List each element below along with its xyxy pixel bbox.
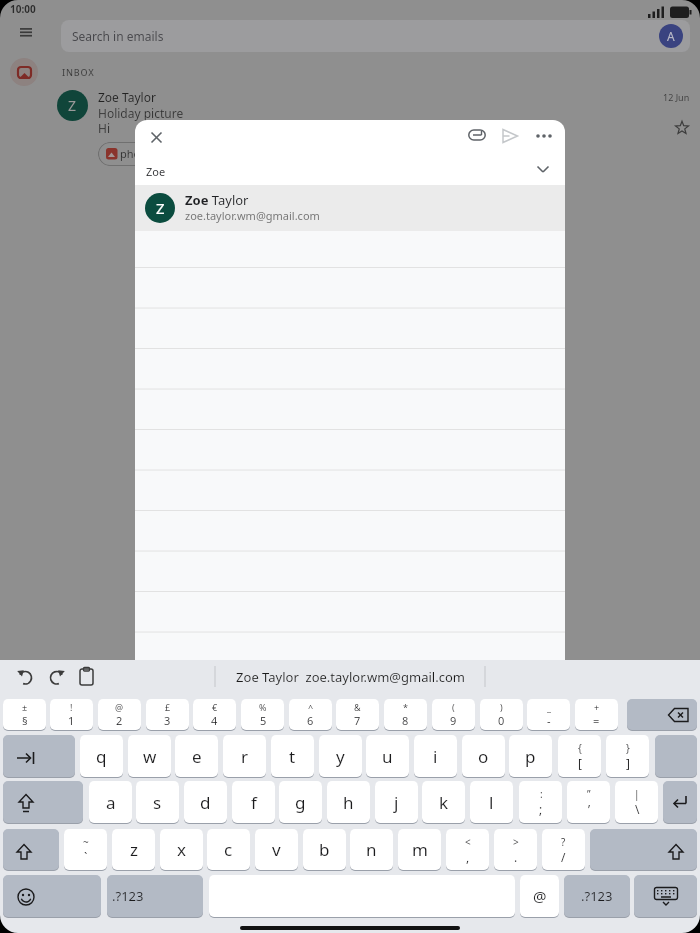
staticText: Z [68,96,77,115]
button[interactable]: % [241,699,284,730]
button[interactable]: ± [3,699,46,730]
staticText: % [259,701,267,713]
button[interactable]: w [128,735,171,777]
staticText: j [394,791,399,814]
button[interactable]: m [398,829,441,870]
button[interactable]: ~ [64,829,107,870]
button[interactable]: @ [520,875,559,917]
staticText: @ [533,886,547,906]
button[interactable]: z [112,829,155,870]
button[interactable] [655,735,697,777]
button[interactable]: d [184,781,227,823]
button[interactable] [537,166,549,173]
staticText: Zoe [146,164,166,179]
button[interactable] [663,781,697,823]
button[interactable]: .?123 [107,875,203,917]
button[interactable]: .?123 [564,875,630,917]
button[interactable] [17,669,34,685]
button[interactable]: s [136,781,179,823]
staticText: pho [120,146,141,161]
button[interactable]: v [255,829,298,870]
staticText: a [106,791,116,814]
button[interactable]: < [446,829,489,870]
button[interactable]: _ [527,699,570,730]
staticText: A [667,28,675,44]
staticText: n [366,838,377,861]
button[interactable]: ) [480,699,523,730]
button[interactable] [627,699,697,730]
button[interactable]: t [271,735,314,777]
staticText: z [130,838,138,861]
button[interactable]: ^ [289,699,332,730]
button[interactable]: ? [542,829,585,870]
button[interactable]: e [175,735,218,777]
button[interactable]: A [659,24,683,48]
staticText: : [540,787,543,801]
button[interactable]: ( [432,699,475,730]
button[interactable]: k [422,781,465,823]
button[interactable]: ! [50,699,93,730]
button[interactable]: * [384,699,427,730]
button[interactable]: € [193,699,236,730]
button[interactable]: Search in emails [61,20,690,52]
button[interactable]: a [89,781,132,823]
staticText: 3 [164,713,171,728]
staticText: ; [539,801,543,817]
button[interactable] [79,667,95,686]
button[interactable]: b [303,829,346,870]
button[interactable]: g [279,781,322,823]
button[interactable]: { [558,735,601,777]
button[interactable]: n [350,829,393,870]
staticText: 1 [68,713,75,728]
button[interactable]: f [232,781,275,823]
button[interactable]: £ [146,699,189,730]
button[interactable] [3,829,59,870]
button[interactable]: r [223,735,266,777]
button[interactable]: | [615,781,658,823]
staticText: INBOX [62,66,95,78]
staticText: ~ [83,835,89,849]
button[interactable] [3,735,75,777]
button[interactable]: Z [135,185,565,231]
button[interactable]: Zoe Taylor zoe.taylor.wm@gmail.com [215,660,485,693]
button[interactable] [48,669,65,685]
button[interactable]: + [575,699,618,730]
button[interactable]: y [319,735,362,777]
button[interactable]: q [80,735,123,777]
button[interactable] [20,28,32,37]
staticText: 9 [450,713,457,728]
button[interactable]: i [414,735,457,777]
staticText: Holiday picture [98,105,184,121]
button[interactable] [3,781,83,823]
button[interactable]: u [366,735,409,777]
button[interactable]: > [494,829,537,870]
staticText: { [578,741,582,755]
button[interactable]: x [160,829,203,870]
button[interactable]: o [462,735,505,777]
button[interactable]: c [207,829,250,870]
button[interactable] [502,128,519,145]
staticText: * [403,701,408,713]
button[interactable]: : [519,781,562,823]
button[interactable]: p [509,735,552,777]
button[interactable] [634,875,697,917]
button[interactable] [468,129,486,142]
button[interactable] [675,121,689,135]
button[interactable]: l [470,781,513,823]
button[interactable]: @ [98,699,141,730]
staticText: g [295,791,306,814]
staticText: k [439,791,449,814]
button[interactable]: & [336,699,379,730]
button[interactable]: j [375,781,418,823]
staticText: m [412,838,428,861]
staticText: u [382,745,393,768]
button[interactable] [10,58,38,86]
button[interactable]: h [327,781,370,823]
button[interactable]: } [606,735,649,777]
button[interactable] [3,875,101,917]
button[interactable] [590,829,697,870]
button[interactable] [536,133,552,139]
button[interactable]: ” [567,781,610,823]
button[interactable] [151,132,162,143]
